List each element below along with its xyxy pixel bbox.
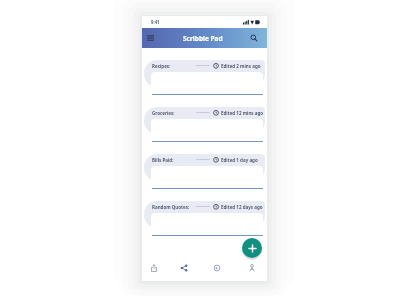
button[interactable] [242,238,262,258]
button[interactable] [211,262,223,274]
staticText: Edited 12 mins ago [221,110,264,116]
button[interactable] [144,154,265,181]
button[interactable] [144,107,265,134]
staticText: Recipes: [152,63,171,69]
staticText: Edited 12 days ago [221,204,263,210]
staticText: Bills Paid: [152,157,174,163]
button[interactable] [248,32,260,44]
staticText: Edited 2 mins ago [221,63,261,69]
staticText: Groceries: [152,110,175,116]
button[interactable] [144,201,265,228]
button[interactable] [148,262,160,274]
staticText: Scribble Pad [183,34,223,43]
staticText: Edited 1 day ago [221,157,258,163]
button[interactable] [178,262,190,274]
button[interactable] [144,60,265,87]
button[interactable] [144,32,156,44]
staticText: Random Quotes: [152,204,190,210]
button[interactable] [246,262,258,274]
staticText: 9:41 [151,19,160,25]
